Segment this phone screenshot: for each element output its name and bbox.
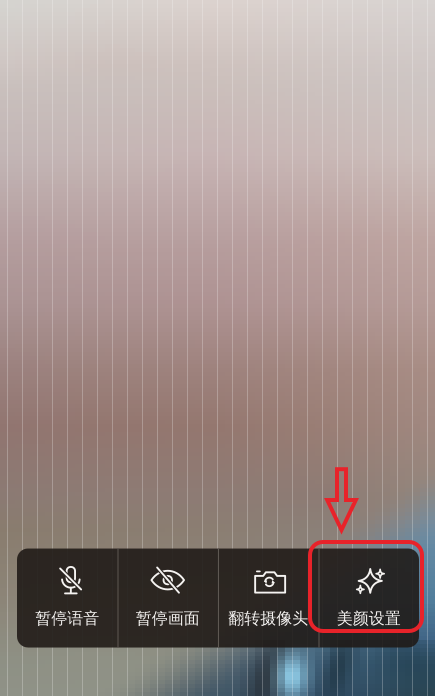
staticText: 暂停画面 <box>136 608 200 628</box>
staticText: 美颜设置 <box>337 608 401 628</box>
staticText: 暂停语音 <box>35 608 99 628</box>
button[interactable]: 翻转摄像头 <box>218 548 318 647</box>
button[interactable]: 暂停画面 <box>117 548 218 647</box>
button[interactable]: 暂停语音 <box>17 548 117 647</box>
button[interactable]: 美颜设置 <box>318 548 419 647</box>
staticText: 翻转摄像头 <box>228 608 308 628</box>
